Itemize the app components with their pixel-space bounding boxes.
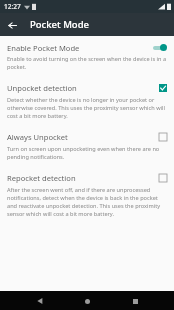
button[interactable]: Enable Pocket Mode [152,42,169,53]
staticText: Always Unpocket [7,132,153,142]
staticText: Turn on screen upon unpocketing even whe… [7,145,169,161]
button[interactable]: Navigate up [3,16,21,34]
staticText: Enable Pocket Mode [7,43,148,53]
staticText: After the screen went off, and if there … [7,186,169,218]
staticText: Pocket Mode [30,18,90,31]
button[interactable]: Back [32,293,48,309]
button[interactable]: Recent apps [127,293,143,309]
button[interactable]: Disabled [157,131,169,143]
button[interactable]: Unpocket detection [0,76,174,125]
staticText: Unpocket detection [7,83,153,93]
staticText: Repocket detection [7,173,153,183]
staticText: 12:27 [4,2,21,11]
button[interactable]: Repocket detection [0,166,174,223]
button[interactable]: Enabled [157,82,169,94]
staticText: Detect whether the device is no longer i… [7,96,169,120]
button[interactable]: Home [79,293,95,309]
button[interactable]: Enable Pocket Mode [0,36,174,76]
button[interactable]: Always Unpocket [0,125,174,166]
staticText: Enable to avoid turning on the screen wh… [7,55,169,71]
button[interactable]: Disabled [157,172,169,184]
